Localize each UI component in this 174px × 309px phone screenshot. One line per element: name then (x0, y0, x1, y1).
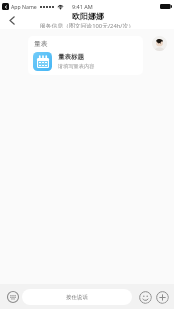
staticText: 按住说话 (66, 294, 88, 301)
staticText: 量表 (34, 39, 48, 48)
button[interactable]: 量表 (28, 36, 143, 75)
staticText: 量表标题 (58, 53, 84, 61)
button[interactable]: More (155, 290, 169, 304)
staticText: 服务信息（图文问诊100元/24h/次） (40, 22, 135, 28)
staticText: 请填写量表内容 (58, 63, 95, 70)
button[interactable]: Keyboard (5, 289, 20, 304)
button[interactable]: 按住说话 (22, 289, 132, 305)
button[interactable]: Emoji (138, 290, 152, 304)
staticText: 欧阳娜娜 (72, 11, 104, 21)
staticText: App Name (11, 3, 37, 10)
button[interactable]: Back (0, 12, 24, 29)
staticText: 9:41 AM (72, 3, 93, 10)
